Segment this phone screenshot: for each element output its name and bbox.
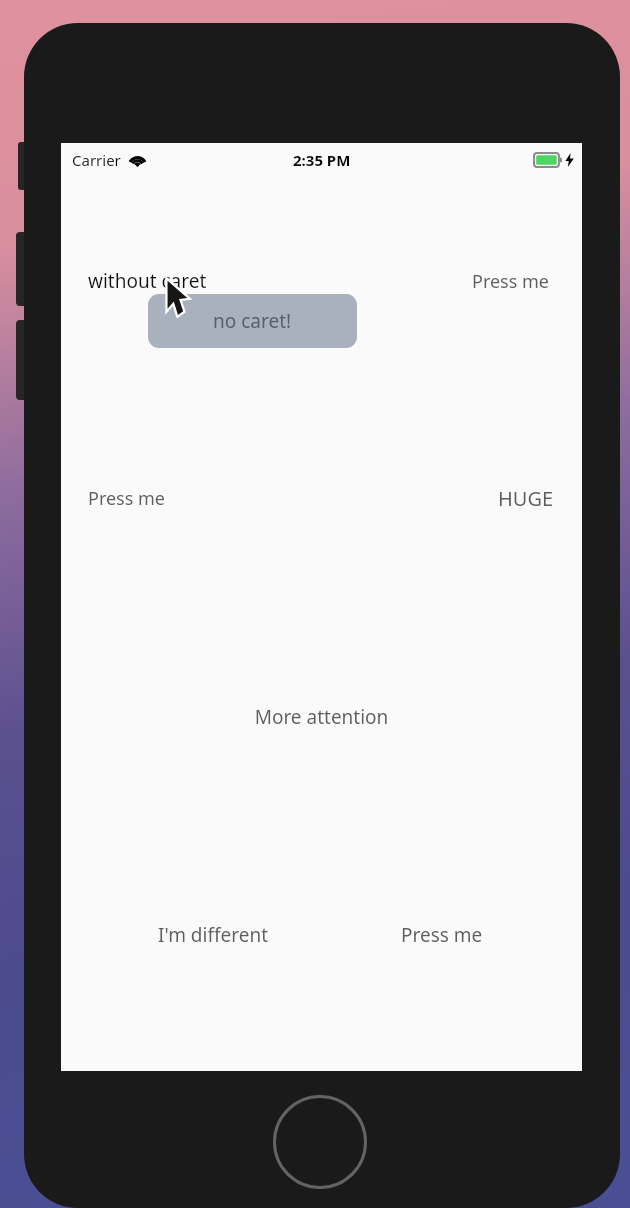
button[interactable]: HUGE [498,485,554,512]
button[interactable]: I'm different [158,922,269,948]
staticText: Carrier [72,150,121,170]
button[interactable]: Home [273,1095,367,1189]
staticText: 2:35 PM [293,150,351,170]
button[interactable]: More attention [61,704,582,730]
button[interactable]: Press me [472,269,550,294]
button[interactable]: Press me [401,922,483,948]
button[interactable]: Press me [88,486,166,511]
button[interactable]: without caret [88,268,207,294]
staticText: no caret! [213,308,292,334]
